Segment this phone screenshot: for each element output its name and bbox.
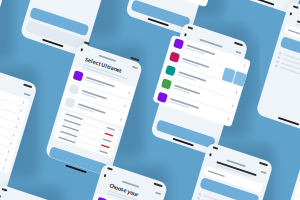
button[interactable]: Next	[54, 9, 122, 20]
button[interactable]: Continue	[79, 149, 147, 160]
button[interactable]: Add account	[159, 2, 227, 13]
staticText: Select Ultranet	[90, 52, 128, 60]
button[interactable]: Cancel	[54, 20, 122, 34]
staticText: Choose your	[116, 179, 146, 186]
button[interactable]: Register	[209, 174, 277, 188]
button[interactable]: Register	[290, 33, 300, 47]
button[interactable]: Add account	[184, 122, 252, 133]
